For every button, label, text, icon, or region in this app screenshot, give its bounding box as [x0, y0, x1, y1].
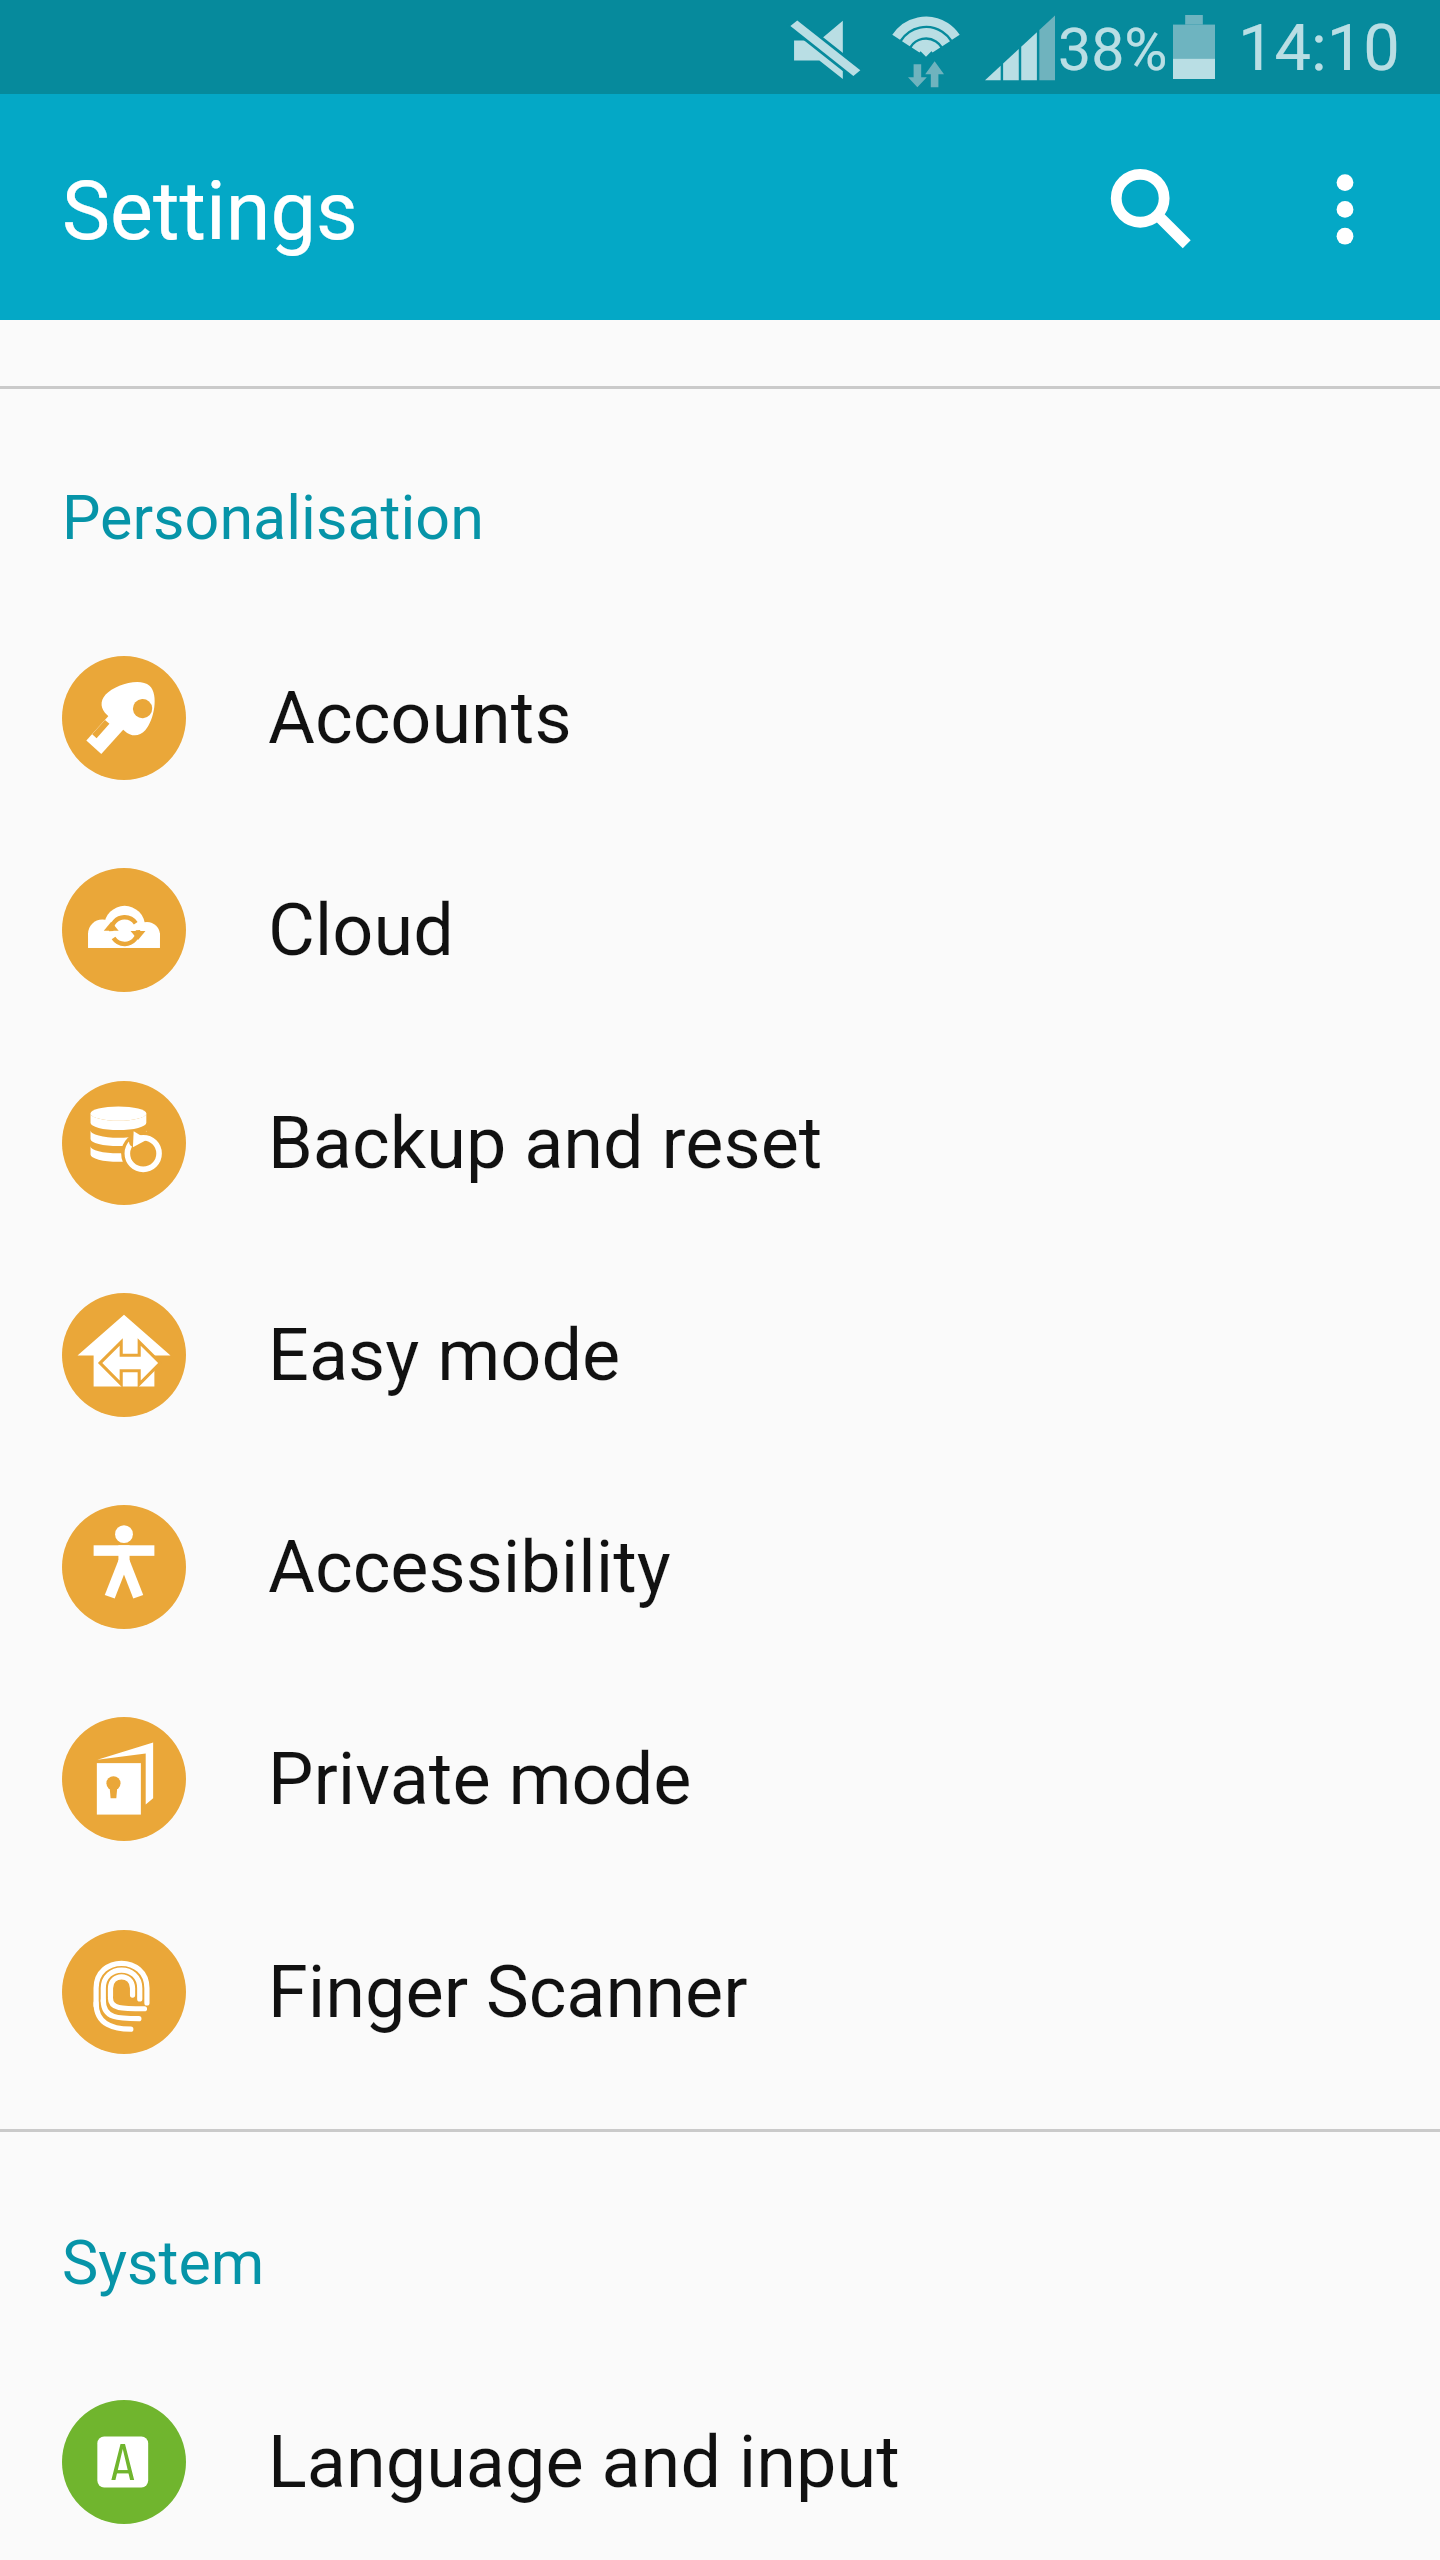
- button[interactable]: Finger Scanner: [0, 1882, 1440, 2102]
- staticText: Accounts: [268, 676, 572, 760]
- staticText: System: [62, 2227, 265, 2298]
- staticText: Language and input: [268, 2420, 900, 2504]
- button[interactable]: Accounts: [0, 608, 1440, 828]
- staticText: Settings: [62, 164, 358, 259]
- staticText: 38%: [1058, 15, 1168, 84]
- button[interactable]: Backup and reset: [0, 1033, 1440, 1253]
- staticText: Private mode: [268, 1737, 692, 1821]
- staticText: Personalisation: [62, 482, 484, 553]
- staticText: Backup and reset: [268, 1101, 823, 1185]
- staticText: Finger Scanner: [268, 1950, 748, 2034]
- button[interactable]: Language and input: [0, 2352, 1440, 2560]
- button[interactable]: Search: [1071, 127, 1231, 287]
- button[interactable]: Cloud: [0, 820, 1440, 1040]
- button[interactable]: More options: [1265, 127, 1425, 287]
- staticText: Accessibility: [268, 1525, 671, 1609]
- button[interactable]: Private mode: [0, 1669, 1440, 1889]
- staticText: Cloud: [268, 888, 454, 972]
- staticText: 14:10: [1238, 10, 1400, 86]
- button[interactable]: Easy mode: [0, 1245, 1440, 1465]
- button[interactable]: Accessibility: [0, 1457, 1440, 1677]
- staticText: Easy mode: [268, 1313, 621, 1397]
